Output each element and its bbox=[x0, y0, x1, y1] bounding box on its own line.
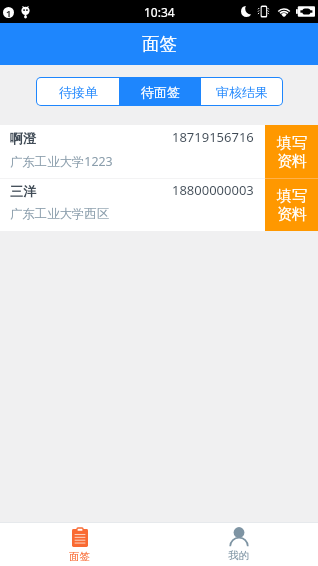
staticText: 18800000003 bbox=[172, 181, 254, 199]
staticText: 审核结果 bbox=[216, 84, 268, 100]
button[interactable]: 审核结果 bbox=[201, 78, 282, 105]
staticText: 1 bbox=[6, 7, 12, 18]
staticText: 广东工业大学1223 bbox=[10, 153, 113, 170]
staticText: 填写资料 bbox=[276, 187, 308, 223]
button[interactable]: 三洋 bbox=[0, 178, 318, 231]
staticText: 广东工业大学西区 bbox=[10, 206, 110, 222]
button[interactable]: 待面签 bbox=[119, 78, 201, 105]
button[interactable]: 我的 bbox=[159, 523, 318, 566]
staticText: 我的 bbox=[228, 549, 249, 562]
button[interactable]: 啊澄 bbox=[0, 125, 318, 178]
button[interactable]: 面签 bbox=[0, 523, 159, 566]
staticText: 18719156716 bbox=[172, 128, 254, 146]
staticText: 面签 bbox=[69, 550, 90, 563]
staticText: 面签 bbox=[142, 33, 177, 55]
staticText: 填写资料 bbox=[276, 134, 308, 170]
button[interactable]: 填写资料 bbox=[265, 125, 318, 178]
staticText: 待接单 bbox=[59, 84, 98, 100]
staticText: 三洋 bbox=[10, 183, 36, 199]
button[interactable]: 待接单 bbox=[37, 78, 119, 105]
button[interactable]: 填写资料 bbox=[265, 178, 318, 231]
staticText: 啊澄 bbox=[10, 130, 36, 146]
staticText: 10:34 bbox=[144, 4, 175, 20]
staticText: 待面签 bbox=[141, 84, 180, 100]
